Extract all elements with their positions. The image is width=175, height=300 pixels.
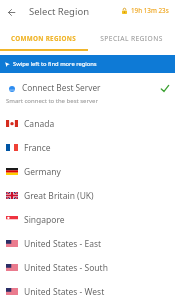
staticText: Smart connect to the best server [6, 97, 98, 105]
button[interactable]: Connect Best Server [0, 76, 175, 108]
button[interactable]: Germany [0, 158, 175, 182]
button[interactable]: Canada [0, 110, 175, 134]
button[interactable]: Swipe left to find more regions [0, 55, 175, 73]
staticText: Select Region [29, 5, 90, 18]
button[interactable]: France [0, 134, 175, 158]
staticText: Connect Best Server [22, 82, 101, 93]
staticText: Singapore [24, 214, 65, 226]
staticText: Canada [24, 118, 55, 130]
button[interactable]: SPECIAL REGIONS [87, 29, 175, 47]
button[interactable]: United States - East [0, 230, 175, 254]
staticText: COMMON REGIONS [11, 34, 76, 43]
button[interactable]: Back [5, 6, 18, 19]
staticText: United States - South [24, 262, 108, 274]
staticText: 19h 13m 23s [131, 6, 169, 15]
button[interactable]: COMMON REGIONS [0, 29, 87, 47]
other: Selected [158, 83, 170, 95]
button[interactable]: Singapore [0, 206, 175, 230]
staticText: Great Britain (UK) [24, 190, 94, 202]
staticText: United States - East [24, 238, 102, 250]
button[interactable]: United States - West [0, 278, 175, 300]
button[interactable]: Great Britain (UK) [0, 182, 175, 206]
staticText: SPECIAL REGIONS [100, 34, 163, 43]
staticText: Germany [24, 166, 61, 178]
staticText: France [24, 142, 51, 154]
staticText: United States - West [24, 286, 105, 298]
staticText: Swipe left to find more regions [13, 60, 97, 68]
button[interactable]: United States - South [0, 254, 175, 278]
